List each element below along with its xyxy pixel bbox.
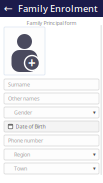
- staticText: Phone number: [8, 137, 43, 144]
- staticText: Gender: [14, 109, 32, 116]
- staticText: ▾: [93, 151, 96, 158]
- button[interactable]: Region: [4, 149, 99, 160]
- staticText: Surname: [8, 81, 30, 88]
- button[interactable]: Gender: [4, 107, 99, 118]
- staticText: ←: [4, 2, 13, 14]
- staticText: Family Principal form: [26, 19, 76, 27]
- button[interactable]: Date of Birth: [4, 121, 99, 132]
- button[interactable]: Phone number: [4, 135, 99, 146]
- button[interactable]: Town: [4, 163, 99, 174]
- staticText: Date of Birth: [15, 123, 45, 130]
- staticText: ▾: [93, 165, 96, 172]
- button[interactable]: Other names: [4, 93, 99, 104]
- staticText: Family Enrolment: [18, 2, 98, 15]
- staticText: Other names: [8, 95, 40, 102]
- staticText: Region: [14, 151, 30, 158]
- button[interactable]: Add photo: [4, 27, 45, 75]
- staticText: +: [28, 54, 36, 72]
- staticText: Town: [14, 165, 27, 172]
- staticText: ▾: [93, 109, 96, 116]
- button[interactable]: Surname: [4, 79, 99, 90]
- button[interactable]: Back — Family Enrolment: [0, 0, 103, 17]
